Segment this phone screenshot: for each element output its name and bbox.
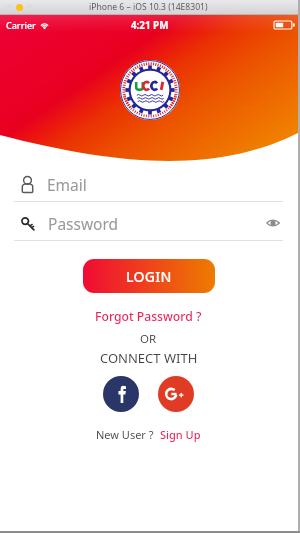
- button[interactable]: Sign Up: [160, 427, 201, 442]
- staticText: OR: [140, 331, 157, 347]
- button[interactable]: Email: [14, 172, 283, 202]
- staticText: Forgot Password ?: [95, 308, 202, 325]
- staticText: New User ?: [96, 427, 154, 442]
- staticText: iPhone 6 – iOS 10.3 (14E8301): [89, 1, 208, 13]
- other: Minimize: [16, 4, 23, 11]
- button[interactable]: Sign in with Facebook: [103, 376, 139, 412]
- staticText: Email: [47, 174, 87, 195]
- staticText: CONNECT WITH: [100, 349, 198, 367]
- button[interactable]: Password: [14, 211, 283, 241]
- staticText: Sign Up: [160, 427, 201, 442]
- staticText: 4:21 PM: [131, 19, 169, 32]
- staticText: Password: [48, 213, 119, 234]
- button[interactable]: Forgot Password ?: [95, 308, 202, 325]
- button[interactable]: Show password: [263, 213, 283, 233]
- button[interactable]: LOGIN: [83, 259, 215, 293]
- staticText: LOGIN: [126, 267, 172, 286]
- staticText: Carrier: [6, 19, 36, 31]
- button[interactable]: Sign in with Google: [158, 376, 194, 412]
